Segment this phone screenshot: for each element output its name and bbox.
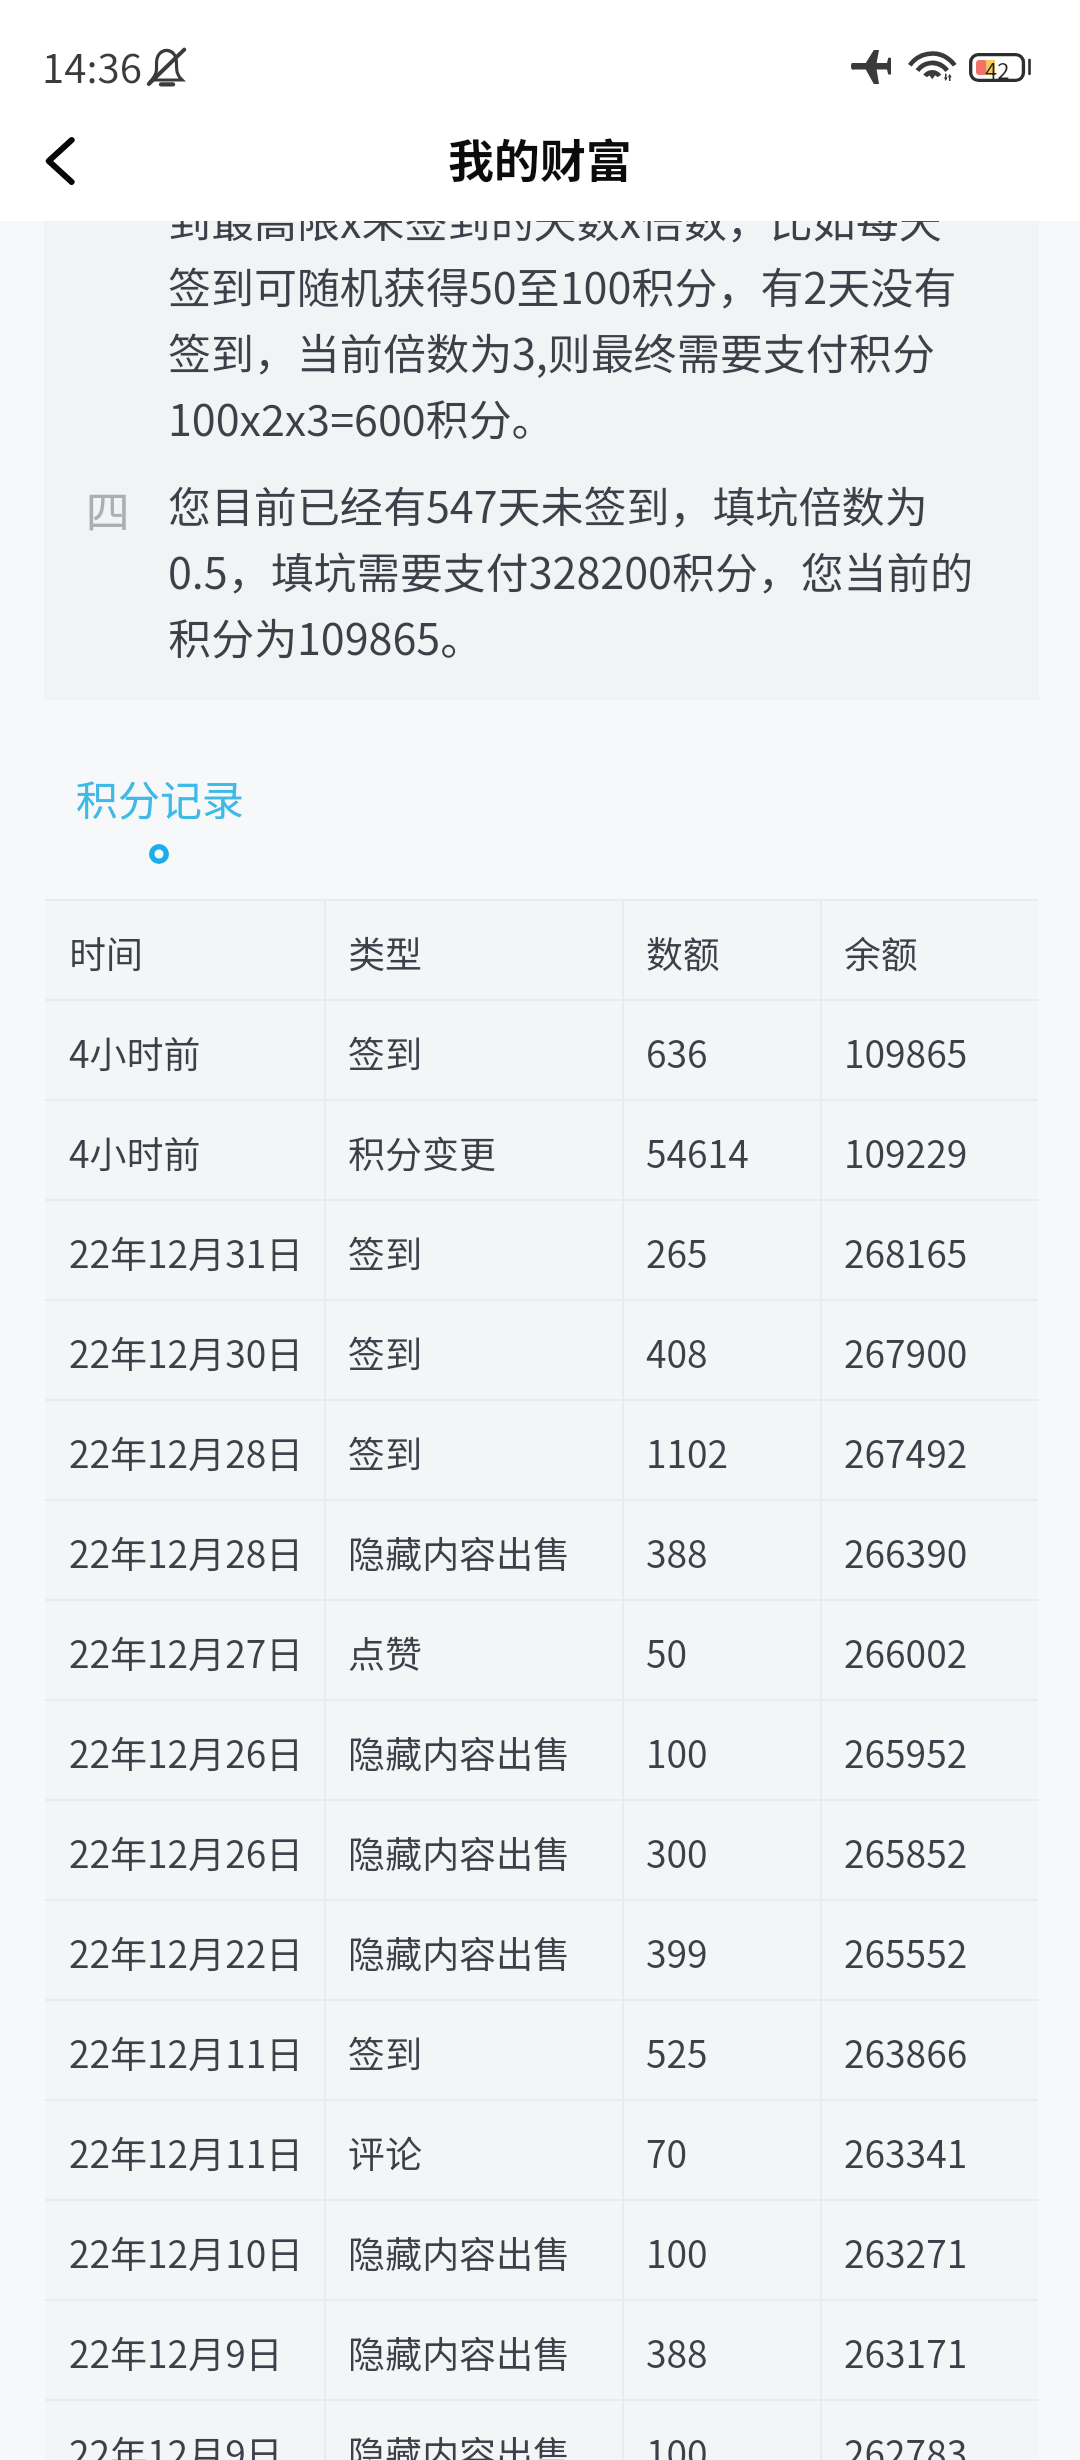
staticText: 隐藏内容出售 [348, 1925, 570, 1979]
staticText: 隐藏内容出售 [348, 1825, 570, 1879]
staticText: 50 [646, 1625, 688, 1679]
staticText: 22年12月30日 [69, 1325, 304, 1379]
staticText: 签到 [348, 1325, 422, 1379]
staticText: 266002 [844, 1625, 968, 1679]
staticText: 隐藏内容出售 [348, 2325, 570, 2379]
staticText: 263171 [844, 2325, 968, 2379]
staticText: 22年12月31日 [69, 1225, 304, 1279]
staticText: 数额 [646, 925, 720, 979]
staticText: 22年12月28日 [69, 1525, 304, 1579]
staticText: 265552 [844, 1925, 968, 1979]
staticText: 100 [646, 2425, 708, 2460]
staticText: 您目前已经有547天未签到，填坑倍数为0.5，填坑需要支付328200积分，您当… [168, 473, 984, 667]
staticText: 267492 [844, 1425, 968, 1479]
staticText: 时间 [69, 925, 143, 979]
staticText: 签到 [348, 2025, 422, 2079]
staticText: 266390 [844, 1525, 968, 1579]
staticText: 1102 [646, 1425, 729, 1479]
staticText: 268165 [844, 1225, 968, 1279]
staticText: 隐藏内容出售 [348, 2425, 570, 2460]
staticText: 100 [646, 1725, 708, 1779]
staticText: 265952 [844, 1725, 968, 1779]
staticText: 300 [646, 1825, 708, 1879]
staticText: 22年12月10日 [69, 2225, 304, 2279]
staticText: 22年12月26日 [69, 1825, 304, 1879]
staticText: 267900 [844, 1325, 968, 1379]
staticText: 265852 [844, 1825, 968, 1879]
staticText: 22年12月9日 [69, 2425, 283, 2460]
staticText: 隐藏内容出售 [348, 1725, 570, 1779]
staticText: 评论 [348, 2125, 422, 2179]
staticText: 100 [646, 2225, 708, 2279]
staticText: 109229 [844, 1125, 968, 1179]
staticText: 408 [646, 1325, 708, 1379]
staticText: 积分变更 [348, 1125, 496, 1179]
staticText: 525 [646, 2025, 708, 2079]
staticText: 积分记录 [76, 767, 245, 828]
staticText: 签到 [348, 1225, 422, 1279]
staticText: 类型 [348, 925, 422, 979]
staticText: 388 [646, 1525, 708, 1579]
staticText: 636 [646, 1025, 708, 1079]
staticText: 4小时前 [69, 1125, 201, 1179]
staticText: 265 [646, 1225, 708, 1279]
staticText: 四 [86, 477, 130, 541]
staticText: 388 [646, 2325, 708, 2379]
staticText: 签到 [348, 1425, 422, 1479]
staticText: 22年12月26日 [69, 1725, 304, 1779]
staticText: 4小时前 [69, 1025, 201, 1079]
staticText: 399 [646, 1925, 708, 1979]
staticText: 54614 [646, 1125, 749, 1179]
staticText: 263341 [844, 2125, 968, 2179]
staticText: 点赞 [348, 1625, 422, 1679]
staticText: 22年12月22日 [69, 1925, 304, 1979]
staticText: 263866 [844, 2025, 968, 2079]
staticText: 到最高限x未签到的天数x倍数，比如每天签到可随机获得50至100积分，有2天没有… [168, 221, 984, 448]
staticText: 22年12月11日 [69, 2025, 304, 2079]
staticText: 109865 [844, 1025, 968, 1079]
staticText: 22年12月27日 [69, 1625, 304, 1679]
staticText: 70 [646, 2125, 688, 2179]
staticText: 22年12月9日 [69, 2325, 283, 2379]
staticText: 263271 [844, 2225, 968, 2279]
staticText: 余额 [844, 925, 918, 979]
button[interactable]: Back [0, 111, 110, 221]
staticText: 22年12月11日 [69, 2125, 304, 2179]
staticText: 隐藏内容出售 [348, 1525, 570, 1579]
staticText: 签到 [348, 1025, 422, 1079]
staticText: 22年12月28日 [69, 1425, 304, 1479]
staticText: 隐藏内容出售 [348, 2225, 570, 2279]
staticText: 我的财富 [448, 125, 632, 192]
staticText: 14:36 [42, 37, 142, 95]
staticText: 42 [985, 53, 1010, 82]
staticText: 262783 [844, 2425, 968, 2460]
